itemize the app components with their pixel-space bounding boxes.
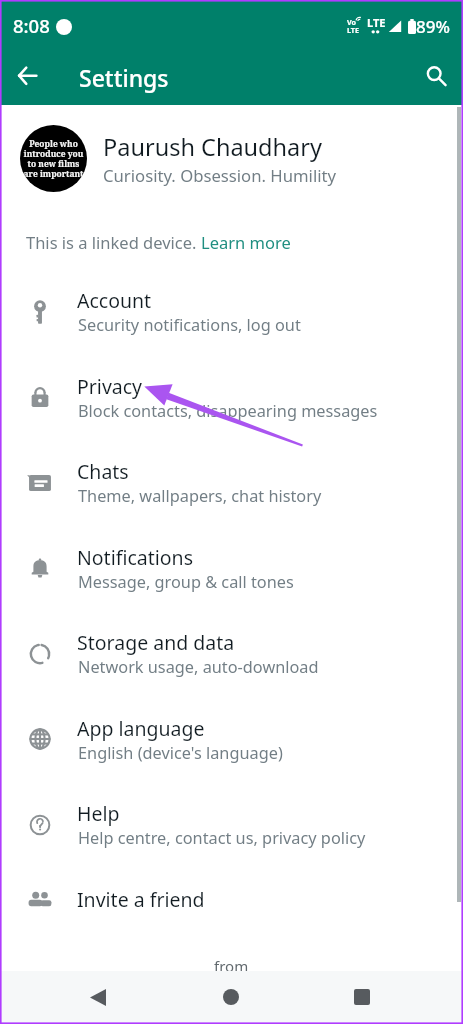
staticText: Chats [77,458,129,485]
button[interactable] [0,610,463,696]
staticText: Storage and data [77,629,235,656]
button[interactable]: Back [72,971,124,1023]
button[interactable]: Home [205,971,257,1023]
staticText: Help [77,800,120,827]
staticText: Help centre, contact us, privacy policy [78,827,366,849]
button[interactable] [0,525,463,611]
staticText: Theme, wallpapers, chat history [78,485,322,507]
staticText: Invite a friend [77,886,205,913]
button[interactable] [0,696,463,782]
staticText: Message, group & call tones [78,571,294,593]
button[interactable] [0,439,463,525]
staticText: Privacy [77,373,143,400]
staticText: 89% [416,15,450,38]
staticText: Account [77,287,152,314]
button[interactable] [0,781,463,867]
staticText: Notifications [77,544,193,571]
staticText: 8:08 [13,13,50,38]
button[interactable]: Back [7,55,49,97]
staticText: People who introduce you to new films ar… [23,138,84,179]
staticText: This is a linked device. [26,231,201,253]
staticText: Paurush Chaudhary [103,131,322,163]
staticText: Security notifications, log out [78,314,301,336]
staticText: Learn more [201,231,291,253]
staticText: Curiosity. Obsession. Humility [103,164,337,187]
staticText: English (device's language) [78,742,283,764]
button[interactable]: Learn more [201,231,291,253]
button[interactable]: Recent apps [336,971,388,1023]
staticText: Network usage, auto-download [78,656,319,678]
staticText: from [214,956,249,976]
staticText: Block contacts, disappearing messages [78,400,378,422]
staticText: LTE [367,15,386,30]
staticText: LTE [347,25,360,35]
staticText: Vo [347,17,357,27]
button[interactable] [0,354,463,440]
staticText: Settings [79,62,169,93]
button[interactable]: Search [414,55,456,97]
button[interactable] [0,107,463,211]
button[interactable] [0,867,463,953]
button[interactable] [0,268,463,354]
staticText: App language [77,715,205,742]
